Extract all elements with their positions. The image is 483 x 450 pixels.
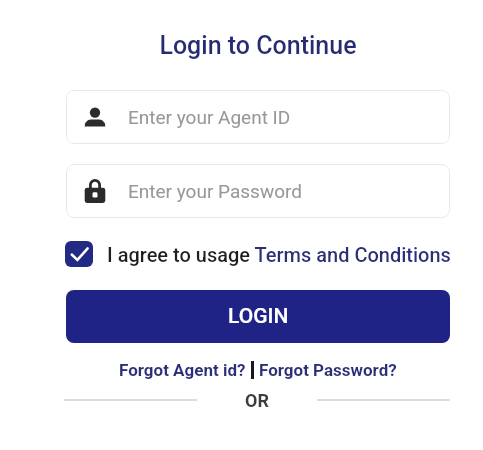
button[interactable]: Agent ID <box>66 90 450 144</box>
button[interactable]: I agree to usage Terms and Conditions <box>65 241 93 267</box>
other: Agent ID <box>83 105 107 129</box>
button[interactable]: Forgot Password? <box>259 360 397 380</box>
staticText: LOGIN <box>228 304 289 329</box>
button[interactable]: Forgot Agent id? <box>119 360 246 380</box>
button[interactable]: Password <box>66 164 450 218</box>
staticText: Enter your Password <box>128 180 302 202</box>
staticText: Login to Continue <box>66 31 450 60</box>
button[interactable]: I agree to usage Terms and Conditions <box>107 243 451 266</box>
staticText: OR <box>245 390 269 411</box>
other: Password <box>83 179 107 203</box>
staticText: Enter your Agent ID <box>128 106 291 128</box>
button[interactable]: LOGIN <box>66 290 450 343</box>
